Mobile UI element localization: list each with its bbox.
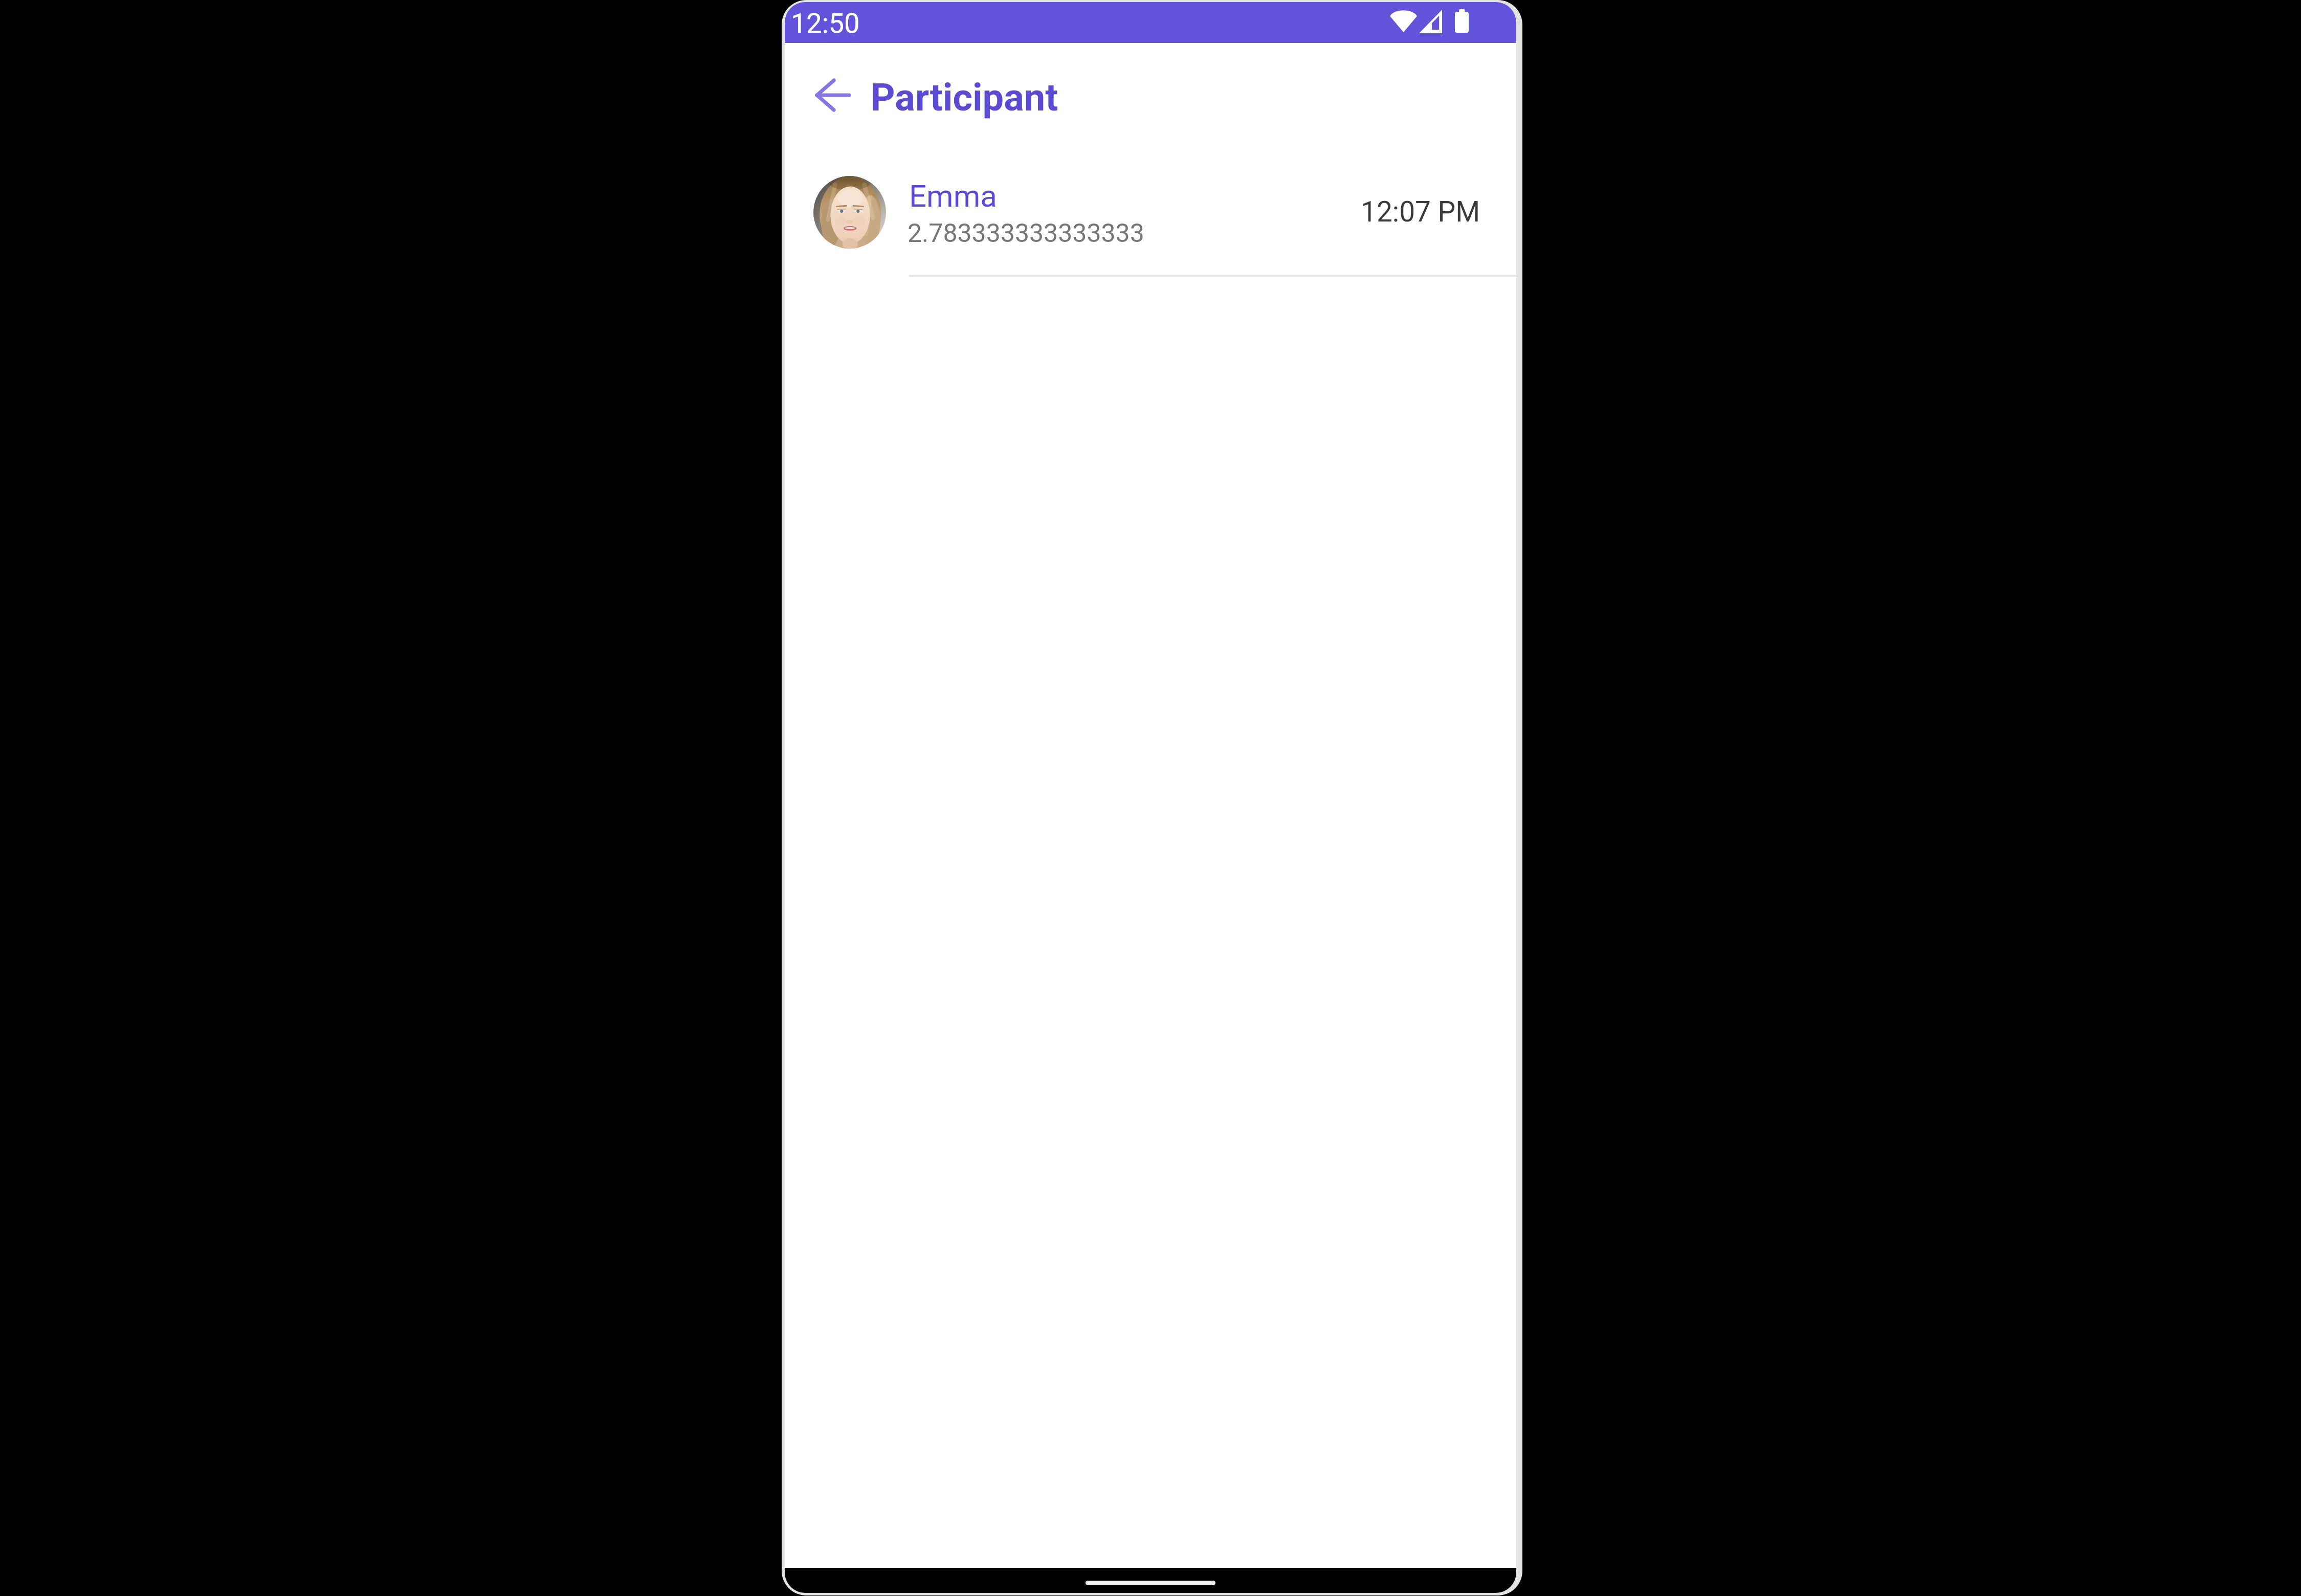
button[interactable]: Home xyxy=(1086,1581,1215,1585)
button[interactable]: Emma xyxy=(785,162,1516,278)
staticText: Emma xyxy=(909,178,997,214)
staticText: 12:07 PM xyxy=(1361,195,1480,228)
button[interactable]: Back xyxy=(808,71,857,120)
staticText: 12:50 xyxy=(791,7,860,39)
staticText: Participant xyxy=(871,75,1058,120)
staticText: 2.783333333333333 xyxy=(908,218,1144,249)
